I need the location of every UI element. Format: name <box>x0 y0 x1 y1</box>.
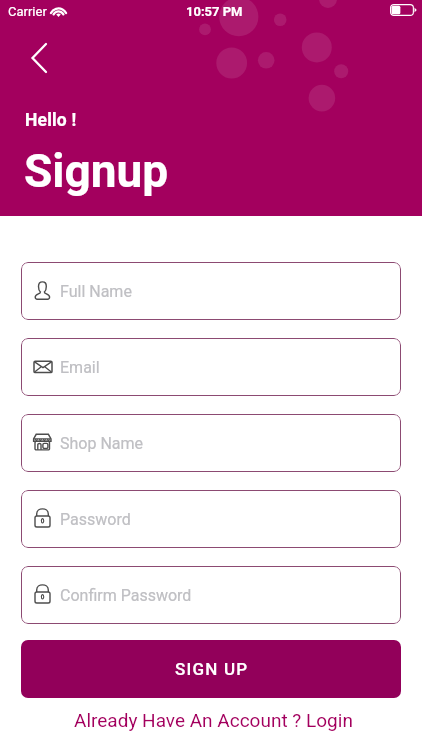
staticText: SIGN UP <box>175 659 249 679</box>
staticText: 10:57 PM <box>186 4 243 19</box>
staticText: Carrier <box>8 4 47 19</box>
staticText: Password <box>60 510 131 529</box>
staticText: Full Name <box>60 282 132 301</box>
button[interactable]: SIGN UP <box>21 640 401 698</box>
button[interactable]: Back <box>18 37 60 79</box>
button[interactable]: Password <box>21 490 401 548</box>
button[interactable]: Shop Name <box>21 414 401 472</box>
button[interactable]: Confirm Password <box>21 566 401 624</box>
button[interactable]: Already Have An Account ? Login <box>0 701 422 739</box>
button[interactable]: Email <box>21 338 401 396</box>
staticText: Confirm Password <box>60 586 192 605</box>
staticText: Already Have An Account ? Login <box>74 709 353 731</box>
staticText: Shop Name <box>60 434 144 453</box>
button[interactable]: Full Name <box>21 262 401 320</box>
staticText: Hello ! <box>25 110 77 131</box>
staticText: Email <box>60 358 100 377</box>
staticText: Signup <box>24 144 169 198</box>
